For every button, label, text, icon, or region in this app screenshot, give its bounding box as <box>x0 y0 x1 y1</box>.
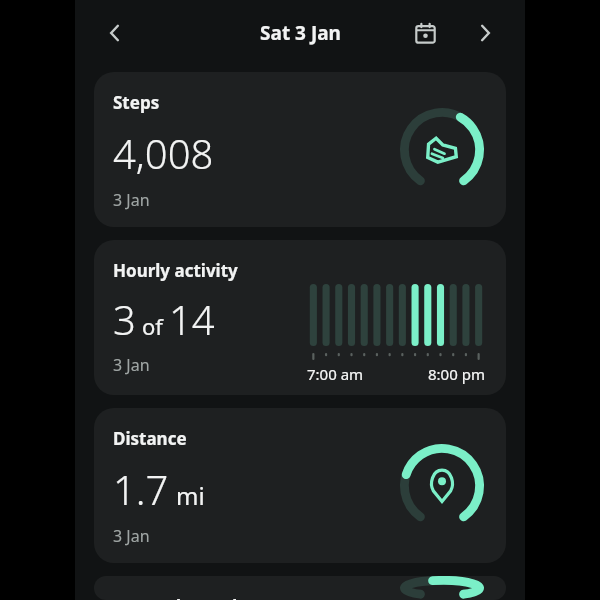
button[interactable]: Distance <box>94 408 506 563</box>
staticText: 4,008 <box>113 126 214 180</box>
staticText: of <box>142 311 163 341</box>
staticText: Hourly activity <box>113 259 238 282</box>
staticText: Energy burned <box>113 595 238 600</box>
button[interactable]: Next day <box>463 11 507 55</box>
button[interactable]: Steps <box>94 72 506 227</box>
button[interactable]: Energy burned <box>94 576 506 600</box>
staticText: Sat 3 Jan <box>260 20 341 46</box>
staticText: 1.7 <box>113 462 169 516</box>
staticText: Steps <box>113 91 160 114</box>
button[interactable]: Previous day <box>93 11 137 55</box>
staticText: 8:00 pm <box>428 364 485 384</box>
staticText: 3 Jan <box>113 354 150 376</box>
staticText: Distance <box>113 427 187 450</box>
staticText: 3 Jan <box>113 189 150 211</box>
button[interactable]: Open calendar <box>403 11 447 55</box>
staticText: 7:00 am <box>307 364 364 384</box>
staticText: 3 <box>113 292 136 346</box>
staticText: 14 <box>169 292 215 346</box>
button[interactable]: Hourly activity <box>94 240 506 395</box>
staticText: 3 Jan <box>113 525 150 547</box>
staticText: mi <box>176 479 205 512</box>
